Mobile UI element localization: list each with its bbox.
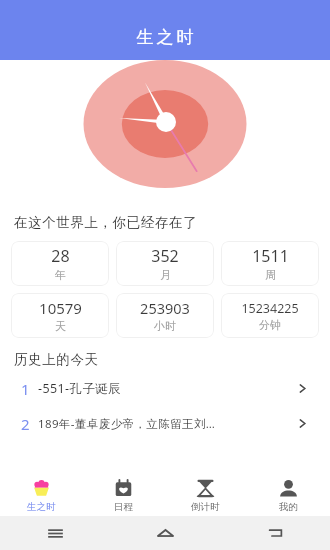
staticText: 周 (265, 268, 276, 282)
button[interactable]: 我的 (247, 478, 330, 513)
button[interactable]: 倒计时 (164, 478, 247, 513)
button[interactable]: 10579 (11, 293, 109, 338)
staticText: 352 (151, 245, 179, 267)
button[interactable]: 352 (116, 241, 214, 286)
staticText: 189年-董卓废少帝，立陈留王刘… (38, 416, 292, 432)
staticText: 倒计时 (191, 501, 220, 513)
staticText: 253903 (140, 298, 190, 318)
staticText: 日程 (114, 501, 133, 513)
staticText: 10579 (39, 298, 82, 318)
staticText: 28 (51, 245, 70, 267)
button[interactable]: Back (220, 523, 330, 544)
staticText: 天 (55, 319, 66, 333)
staticText: 15234225 (241, 300, 299, 317)
staticText: 年 (55, 268, 66, 282)
button[interactable]: Home (110, 523, 220, 544)
button[interactable]: 15234225 (221, 293, 319, 338)
staticText: 在这个世界上，你已经存在了 (14, 214, 198, 231)
staticText: 小时 (154, 319, 176, 333)
button[interactable]: 生之时 (0, 478, 82, 513)
staticText: 生之时 (135, 27, 195, 48)
staticText: 2 (21, 414, 30, 434)
button[interactable]: Recent apps (0, 523, 110, 544)
staticText: 1 (21, 379, 30, 399)
button[interactable]: 1511 (221, 241, 319, 286)
staticText: 1511 (252, 245, 289, 267)
staticText: 生之时 (27, 501, 56, 513)
staticText: 月 (160, 268, 171, 282)
button[interactable]: 2 (13, 410, 317, 437)
staticText: 分钟 (259, 318, 281, 332)
button[interactable]: 日程 (82, 478, 164, 513)
staticText: -551-孔子诞辰 (38, 380, 292, 397)
staticText: 历史上的今天 (14, 351, 99, 368)
staticText: 我的 (279, 501, 298, 513)
button[interactable]: 1 (13, 375, 317, 402)
button[interactable]: 253903 (116, 293, 214, 338)
button[interactable]: 28 (11, 241, 109, 286)
